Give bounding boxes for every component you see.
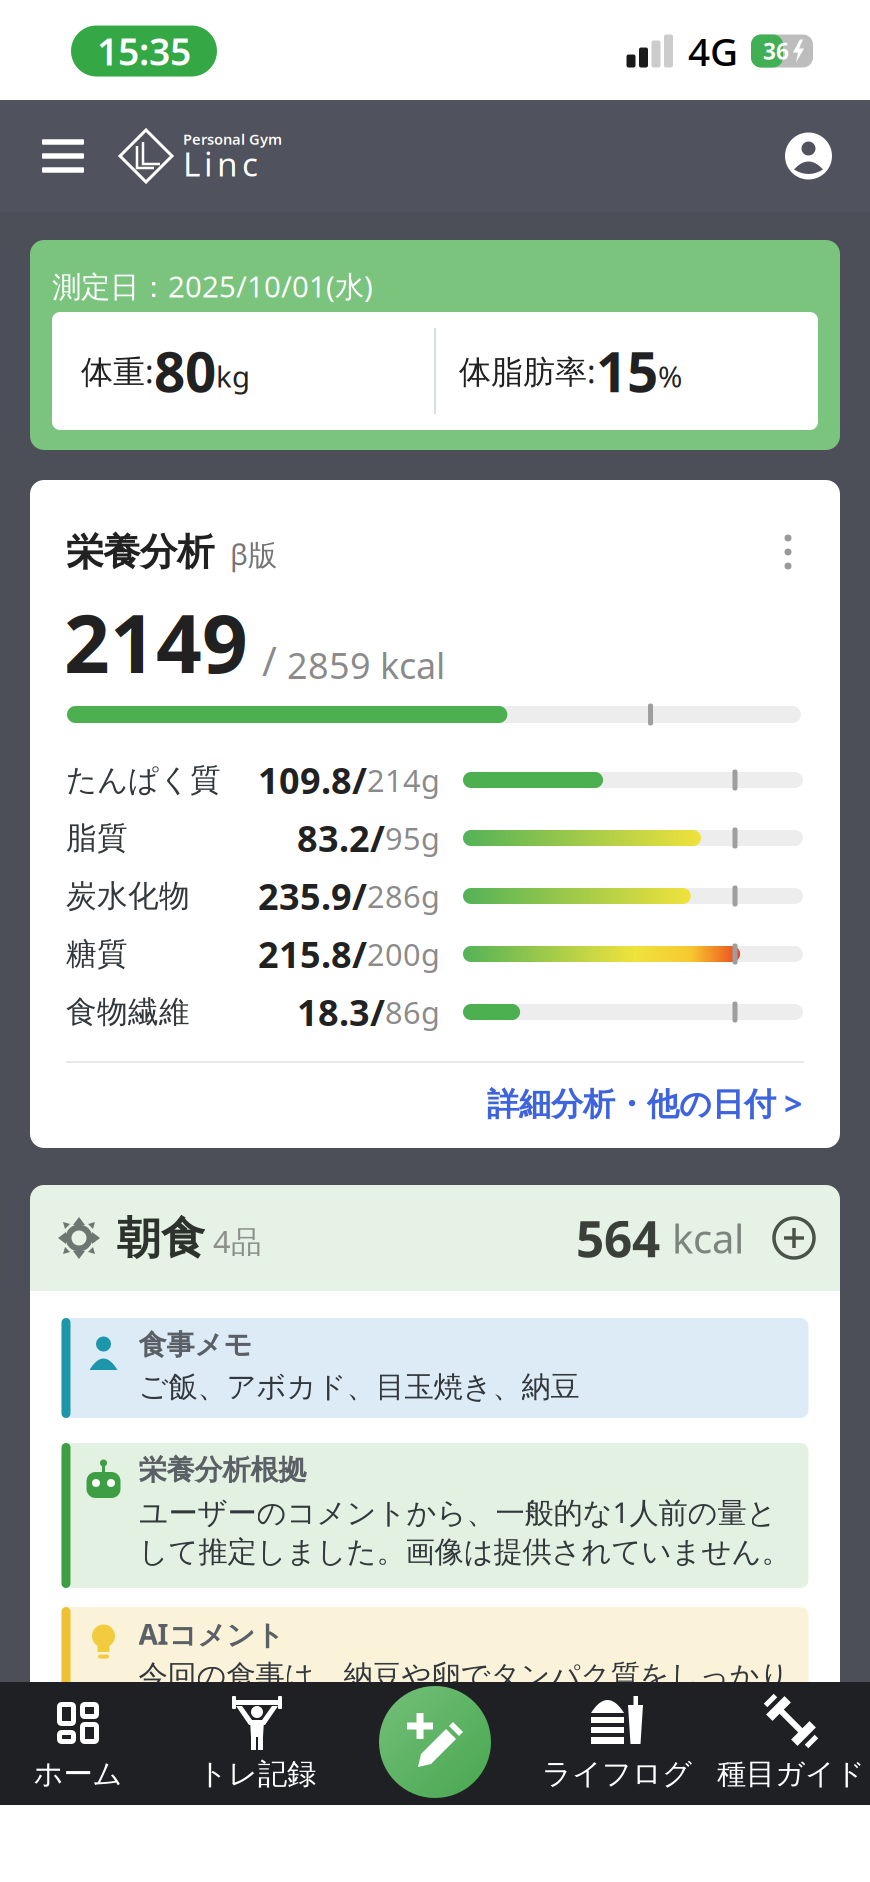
staticText: 86g [385,992,440,1032]
staticText: 栄養分析 [66,529,214,575]
staticText: 測定日：2025/10/01(水) [52,266,373,305]
staticText: 36 [763,36,789,66]
staticText: 83.2/ [297,814,385,862]
staticText: AIコメント [138,1615,284,1653]
staticText: 215.8/ [258,930,367,978]
staticText: 食物繊維 [66,993,190,1031]
button[interactable]: 種目ガイド [704,1682,870,1805]
staticText: 2149 [64,589,248,695]
staticText: kcal [672,1211,744,1264]
staticText: ホーム [33,1756,122,1792]
staticText: 15:35 [97,26,191,76]
button[interactable]: ホーム [0,1682,165,1805]
staticText: Linc [183,141,258,186]
staticText: 今回の食事は、納豆や卵でタンパク質をしっかり [138,1658,789,1694]
button[interactable] [42,139,84,173]
staticText: 200g [367,934,440,974]
button[interactable]: 朝食 [30,1185,840,1291]
staticText: 109.8/ [258,756,367,804]
staticText: 286g [367,876,440,916]
staticText: 235.9/ [258,872,367,920]
button[interactable]: 詳細分析・他の日付 > [487,1083,802,1123]
staticText: β版 [230,534,277,573]
staticText: 糖質 [66,935,128,973]
staticText: 18.3/ [297,988,385,1036]
staticText: 栄養分析根拠 [138,1453,306,1487]
staticText: 95g [385,818,440,858]
staticText: 体脂肪率: [459,350,596,392]
staticText: 214g [367,760,440,800]
button[interactable]: Personal Gym [118,128,363,184]
button[interactable]: 測定日：2025/10/01(水) [30,240,840,450]
staticText: 食事メモ [138,1328,252,1362]
button[interactable]: ライフログ [530,1682,704,1805]
staticText: 種目ガイド [717,1756,865,1792]
staticText: ユーザーのコメントから、一般的な1人前の量と [138,1492,776,1531]
button[interactable] [785,132,832,179]
button[interactable] [770,532,806,572]
staticText: トレ記録 [198,1756,316,1792]
staticText: 4品 [213,1221,262,1261]
staticText: して推定しました。画像は提供されていません。 [138,1534,790,1570]
staticText: 2859 kcal [287,641,445,689]
staticText: 体重: [81,350,154,392]
button[interactable]: 15:35 [71,25,217,76]
staticText: / [262,634,277,687]
staticText: 詳細分析・他の日付 > [487,1082,802,1124]
button[interactable] [348,1682,522,1802]
staticText: Personal Gym [183,129,282,149]
staticText: kg [216,356,250,395]
staticText: 摂れています。 [138,1698,346,1734]
staticText: 4G [688,25,738,77]
staticText: ライフログ [542,1756,692,1792]
staticText: 15 [596,335,658,407]
button[interactable]: トレ記録 [170,1682,344,1805]
staticText: 脂質 [66,819,128,857]
staticText: ご飯、アボカド、目玉焼き、納豆 [138,1369,579,1405]
staticText: たんぱく質 [66,761,221,799]
staticText: 564 [576,1205,660,1271]
staticText: 朝食 [117,1211,205,1265]
staticText: 80 [154,335,216,407]
staticText: % [658,356,682,395]
staticText: 炭水化物 [66,877,190,915]
